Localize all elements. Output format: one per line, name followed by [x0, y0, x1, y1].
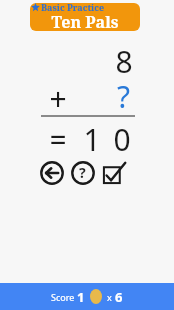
staticText: ? — [117, 76, 131, 110]
button[interactable]: Score — [0, 283, 174, 310]
staticText: = — [40, 119, 76, 160]
staticText: 0 — [108, 119, 136, 160]
button[interactable]: Back — [38, 159, 65, 186]
button[interactable]: ? — [104, 76, 144, 110]
button[interactable]: Help — [69, 159, 96, 186]
staticText: 1 — [77, 288, 85, 306]
staticText: Ten Pals — [30, 11, 140, 33]
staticText: 6 — [115, 288, 123, 306]
staticText: 1 — [78, 119, 106, 160]
staticText: 8 — [104, 41, 144, 82]
staticText: + — [40, 78, 76, 119]
staticText: x — [107, 291, 115, 303]
button[interactable] — [30, 3, 140, 31]
staticText: Basic Practice — [41, 1, 105, 13]
button[interactable]: Submit answer — [100, 159, 127, 186]
staticText: Score — [51, 291, 77, 303]
staticText: ? — [79, 163, 86, 182]
